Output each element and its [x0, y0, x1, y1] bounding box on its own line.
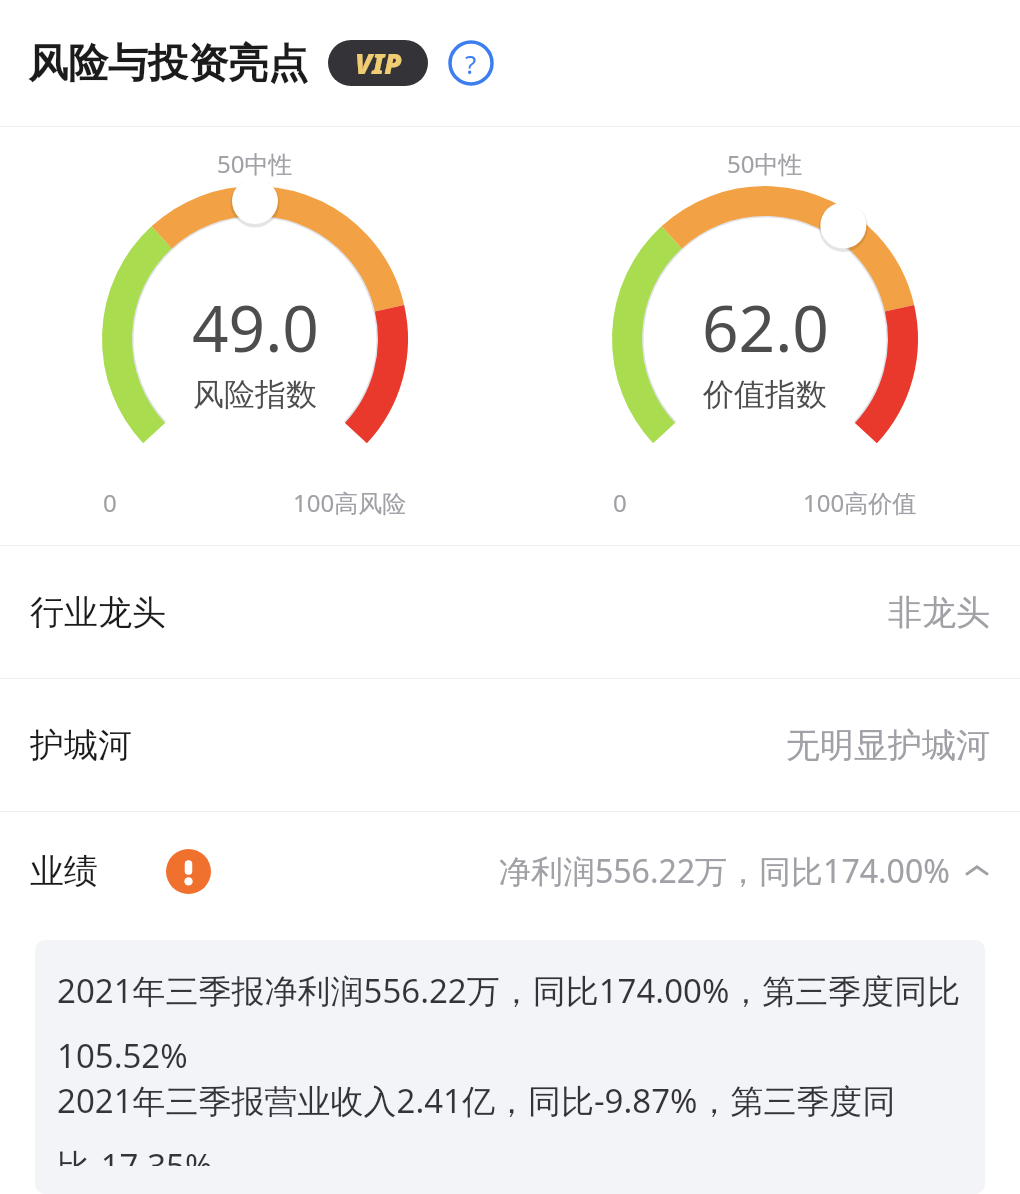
staticText: 非龙头 — [888, 591, 990, 634]
staticText: 0 — [613, 486, 627, 519]
staticText: 2021年三季报营业收入2.41亿，同比-9.87%，第三季度同比-17.35% — [57, 1078, 967, 1166]
button[interactable]: 业绩 — [0, 812, 1020, 930]
staticText: 护城河 — [30, 724, 132, 767]
staticText: 业绩 — [30, 850, 98, 893]
button[interactable]: Help — [448, 40, 494, 86]
staticText: 风险指数 — [193, 375, 317, 414]
staticText: 行业龙头 — [30, 591, 166, 634]
button[interactable]: 行业龙头 — [0, 546, 1020, 678]
staticText: 风险与投资亮点 — [28, 38, 308, 88]
staticText: 100高风险 — [293, 486, 407, 519]
staticText: 价值指数 — [703, 375, 827, 414]
staticText: 50中性 — [727, 147, 803, 180]
staticText: 49.0 — [192, 284, 319, 371]
staticText: ? — [465, 46, 477, 81]
button[interactable]: 护城河 — [0, 679, 1020, 811]
staticText: 62.0 — [702, 284, 829, 371]
staticText: 0 — [103, 486, 117, 519]
staticText: 50中性 — [217, 147, 293, 180]
staticText: VIP — [355, 44, 402, 82]
button[interactable]: VIP — [328, 40, 428, 86]
staticText: 净利润556.22万，同比174.00% — [499, 849, 950, 893]
staticText: 无明显护城河 — [786, 724, 990, 767]
staticText: 100高价值 — [803, 486, 917, 519]
staticText: 2021年三季报净利润556.22万，同比174.00%，第三季度同比105.5… — [57, 968, 967, 1078]
